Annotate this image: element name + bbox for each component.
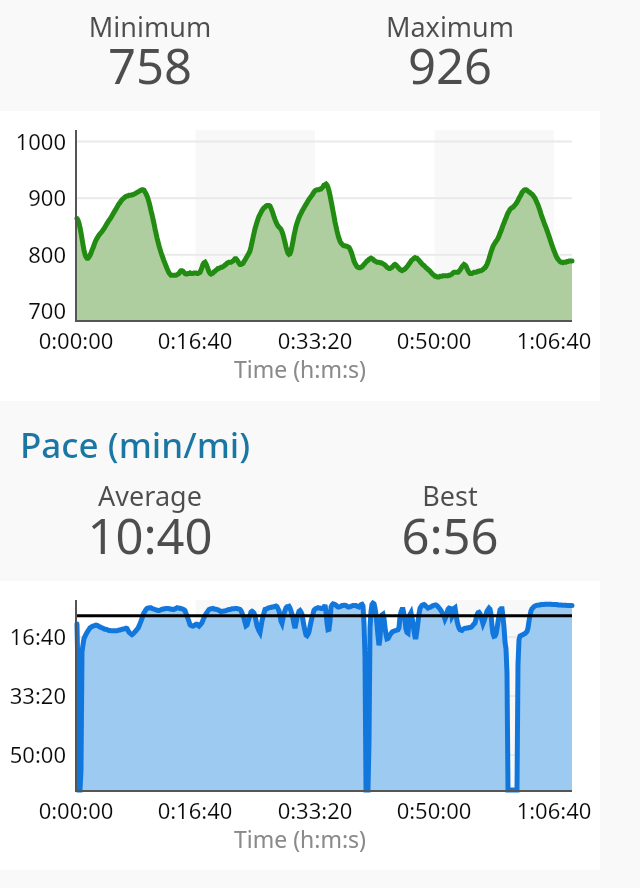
- staticText: 800: [2, 239, 66, 269]
- staticText: 33:20: [0, 680, 66, 710]
- staticText: 700: [2, 295, 66, 325]
- staticText: Pace (min/mi): [20, 421, 251, 469]
- staticText: 50:00: [0, 739, 66, 769]
- staticText: 1000: [2, 126, 66, 156]
- staticText: 0:16:40: [135, 795, 255, 825]
- staticText: 1:06:40: [494, 795, 614, 825]
- staticText: 10:40: [0, 502, 300, 569]
- staticText: 0:50:00: [374, 325, 494, 355]
- button[interactable]: Minimum: [0, 8, 300, 98]
- button[interactable]: Best: [300, 477, 600, 567]
- staticText: 6:56: [300, 502, 600, 569]
- button[interactable]: Maximum: [300, 8, 600, 98]
- staticText: 926: [300, 32, 600, 99]
- staticText: 1:06:40: [494, 325, 614, 355]
- staticText: 0:33:20: [255, 325, 375, 355]
- staticText: Average: [0, 477, 300, 514]
- button[interactable]: Average: [0, 477, 300, 567]
- staticText: 0:50:00: [374, 795, 494, 825]
- staticText: Maximum: [300, 8, 600, 45]
- staticText: Minimum: [0, 8, 300, 45]
- staticText: Best: [300, 477, 600, 514]
- staticText: Time (h:m:s): [0, 823, 600, 854]
- staticText: 16:40: [0, 621, 66, 651]
- staticText: 900: [2, 182, 66, 212]
- staticText: 758: [0, 32, 300, 99]
- staticText: Time (h:m:s): [0, 353, 600, 384]
- staticText: 0:16:40: [135, 325, 255, 355]
- staticText: 0:33:20: [255, 795, 375, 825]
- staticText: 0:00:00: [16, 795, 136, 825]
- staticText: 0:00:00: [16, 325, 136, 355]
